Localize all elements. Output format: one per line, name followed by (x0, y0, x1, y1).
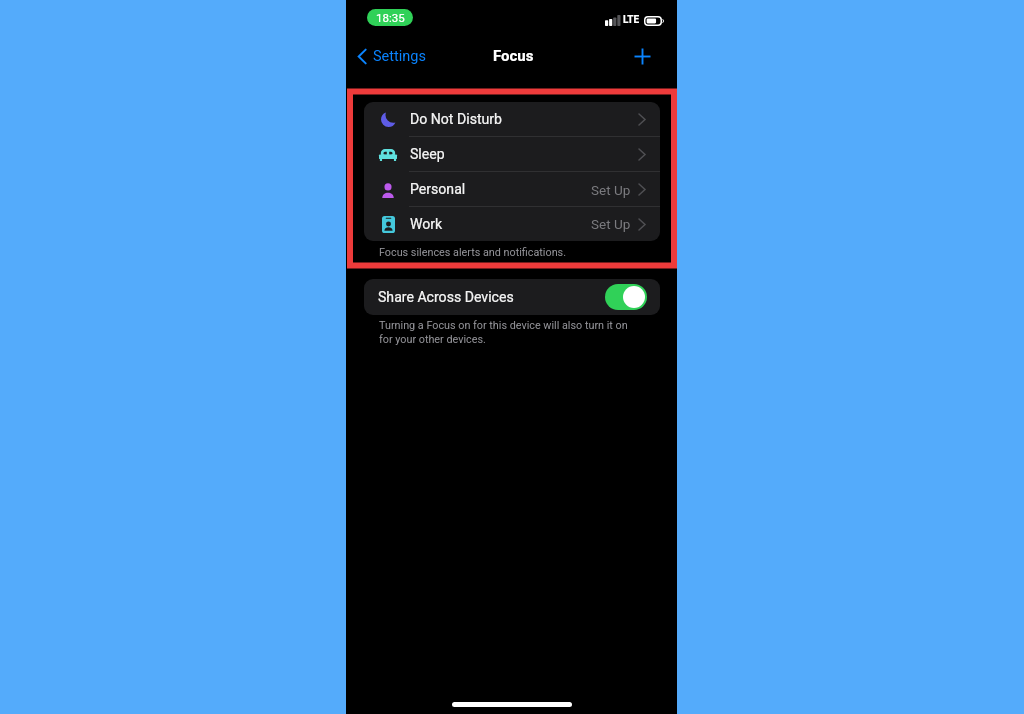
staticText: Do Not Disturb (410, 111, 503, 128)
staticText: Focus silences alerts and notifications. (379, 246, 567, 259)
button[interactable]: Share Across Devices, on (605, 284, 647, 310)
staticText: Focus (493, 47, 534, 65)
staticText: 18:35 (376, 11, 405, 24)
staticText: Share Across Devices (378, 289, 514, 306)
button[interactable]: Personal (364, 172, 660, 207)
staticText: Turning a Focus on for this device will … (379, 319, 628, 345)
button[interactable]: Do Not Disturb (364, 102, 660, 137)
button[interactable]: Add Focus (622, 40, 677, 73)
button[interactable]: Sleep (364, 137, 660, 172)
staticText: Settings (373, 48, 426, 65)
staticText: Personal (410, 181, 466, 198)
staticText: Set Up (591, 182, 631, 198)
staticText: Set Up (591, 216, 631, 232)
button[interactable]: Share Across Devices (364, 279, 660, 315)
button[interactable]: Work (364, 207, 660, 241)
staticText: Sleep (410, 146, 445, 163)
staticText: Work (410, 216, 443, 233)
staticText: LTE (623, 14, 640, 26)
button[interactable]: Settings (346, 43, 436, 70)
